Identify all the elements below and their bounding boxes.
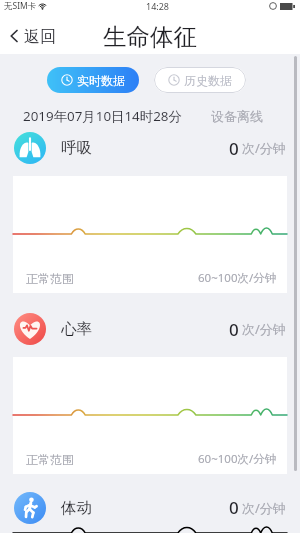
staticText: 心率 [61,319,92,339]
staticText: 实时数据 [77,73,125,88]
staticText: 设备离线 [211,108,263,124]
staticText: 0 [229,318,239,341]
staticText: 体动 [61,498,92,518]
staticText: 14:28 [146,0,170,12]
button[interactable]: 实时数据 [47,67,139,93]
button[interactable]: 呼吸 [0,120,300,301]
button[interactable]: 返回 [0,21,66,51]
staticText: 正常范围 [26,452,74,467]
staticText: 0 [229,137,239,160]
staticText: 生命体征 [103,22,197,52]
staticText: 60~100次/分钟 [198,451,277,467]
button[interactable]: 历史数据 [154,67,246,93]
staticText: 呼吸 [61,138,92,158]
staticText: 2019年07月10日14时28分 [23,107,182,125]
staticText: 次/分钟 [242,499,286,517]
staticText: 0 [229,496,239,519]
staticText: 返回 [24,27,56,47]
staticText: 次/分钟 [242,320,286,338]
staticText: 无SIM卡 [4,0,37,12]
staticText: 次/分钟 [242,139,286,157]
button[interactable]: 心率 [0,301,300,482]
button[interactable]: 体动 [0,482,300,533]
staticText: 历史数据 [184,73,232,88]
staticText: 60~100次/分钟 [198,270,277,286]
staticText: 正常范围 [26,271,74,286]
